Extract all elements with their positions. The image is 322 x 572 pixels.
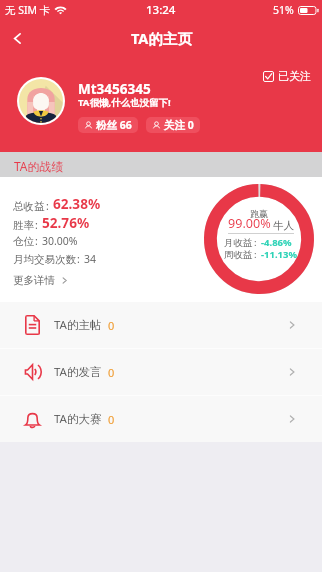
staticText: 更多详情 [13,274,55,287]
staticText: 无 SIM 卡 [5,3,51,17]
staticText: TA的主页 [131,28,192,48]
staticText: 34 [84,252,97,266]
staticText: : [46,199,49,213]
staticText: : [254,236,257,249]
staticText: 99.00% [228,215,271,232]
staticText: TA的发言 [54,364,102,380]
staticText: 62.38% [53,194,101,213]
button[interactable]: TA的主帖 [0,302,322,348]
staticText: 月收益 [224,237,253,249]
button[interactable]: 已关注 [258,64,316,88]
staticText: -4.86% [261,236,292,249]
staticText: -11.13% [261,248,298,261]
staticText: : [254,248,257,261]
staticText: 0 [108,318,115,333]
staticText: 已关注 [278,69,311,83]
staticText: : [35,218,38,232]
staticText: 粉丝 66 [96,118,132,132]
button[interactable]: TA的发言 [0,349,322,395]
staticText: 总收益 [13,200,45,213]
button[interactable]: 更多详情 [13,274,68,287]
staticText: 13:24 [146,2,176,18]
staticText: 关注 0 [164,118,194,132]
staticText: 周收益 [224,249,253,261]
staticText: 0 [108,412,115,427]
button[interactable]: 关注 0 [146,117,200,133]
staticText: TA很懒,什么也没留下! [78,96,171,109]
staticText: : [35,234,38,248]
staticText: 0 [108,365,115,380]
button[interactable]: 粉丝 66 [78,117,138,133]
button[interactable]: Back [0,21,34,55]
staticText: 30.00% [42,234,78,248]
staticText: 51% [273,3,294,17]
staticText: 胜率 [13,219,34,232]
staticText: 月均交易次数 [13,253,76,266]
button[interactable]: TA的大赛 [0,396,322,442]
staticText: TA的战绩 [14,158,64,174]
staticText: TA的大赛 [54,411,102,427]
staticText: 仓位 [13,235,34,248]
staticText: TA的主帖 [54,317,102,333]
staticText: 牛人 [273,219,294,232]
staticText: 跑赢 [250,208,268,219]
staticText: : [77,252,80,266]
staticText: Mt3456345 [78,80,151,98]
staticText: 52.76% [42,213,90,232]
